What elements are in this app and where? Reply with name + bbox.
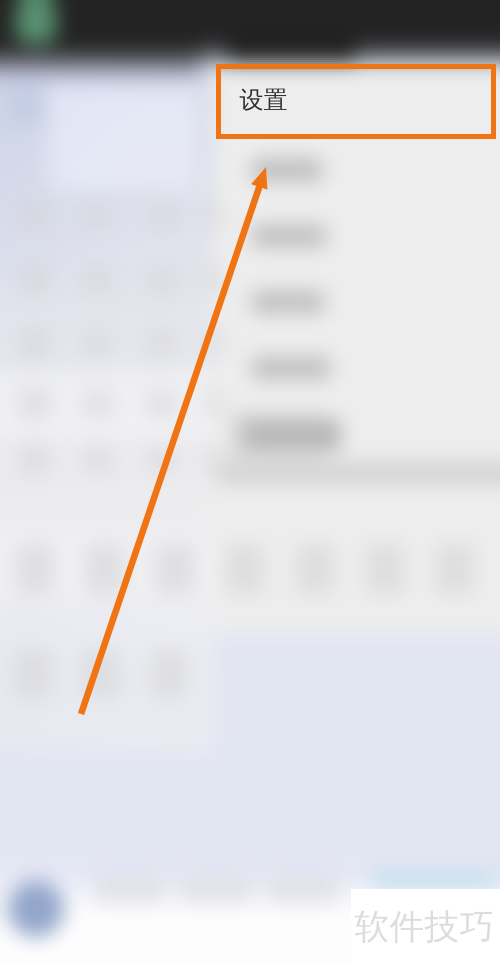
button[interactable]: 设置 [218,66,493,136]
staticText: 软件技巧 [354,906,494,948]
staticText: 设置 [239,85,287,115]
